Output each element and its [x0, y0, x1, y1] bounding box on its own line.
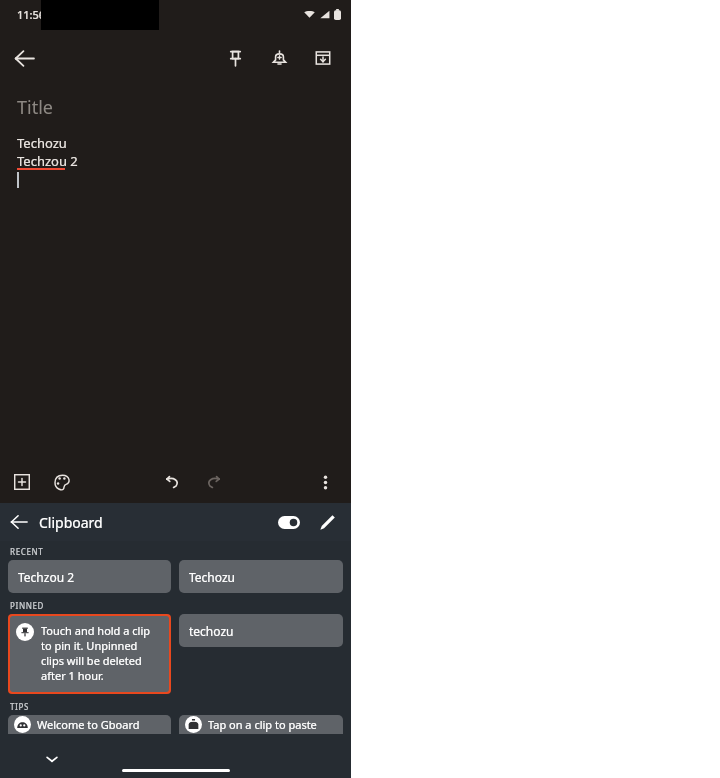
button[interactable]: Tap on a clip to paste	[179, 715, 343, 734]
button[interactable]: Collapse keyboard	[36, 743, 68, 775]
button[interactable]: Back	[0, 34, 48, 82]
staticText: Techozu	[189, 569, 235, 585]
button[interactable]: techozu	[179, 614, 343, 647]
button[interactable]: More options	[305, 462, 345, 502]
button[interactable]: Welcome to Gboard	[8, 715, 171, 734]
staticText: Clipboard	[39, 513, 103, 532]
staticText: 11:56	[17, 7, 46, 22]
button[interactable]: Reminder	[257, 36, 301, 80]
staticText: Touch and hold a clip to pin it. Unpinne…	[41, 623, 163, 683]
button[interactable]: Add attachment	[2, 462, 42, 502]
staticText: Techzou 2	[18, 569, 75, 585]
staticText: Welcome to Gboard	[37, 717, 140, 732]
staticText: techozu	[189, 623, 234, 639]
button[interactable]: Toggle clipboard	[270, 503, 308, 541]
button[interactable]: Undo	[152, 462, 192, 502]
button[interactable]: Edit clipboard	[308, 503, 346, 541]
staticText: RECENT	[10, 546, 44, 557]
staticText: TIPS	[10, 701, 30, 712]
staticText: Techozu	[17, 134, 67, 152]
staticText: PINNED	[10, 600, 45, 611]
button[interactable]: Touch and hold a clip to pin it. Unpinne…	[10, 616, 169, 692]
button[interactable]: Redo	[194, 462, 234, 502]
staticText: Techzou 2	[17, 152, 78, 170]
button[interactable]: Techzou 2	[8, 560, 171, 593]
button[interactable]: Archive	[301, 36, 345, 80]
button[interactable]: Back	[0, 503, 38, 541]
button[interactable]: Techozu	[179, 560, 343, 593]
button[interactable]: Pin note	[213, 36, 257, 80]
button[interactable]: Color palette	[42, 462, 82, 502]
staticText: Tap on a clip to paste	[208, 717, 317, 732]
staticText: Title	[17, 95, 53, 120]
